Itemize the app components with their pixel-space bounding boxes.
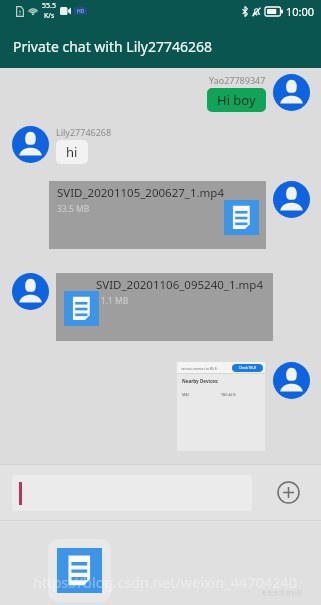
staticText: Nearby Devices:	[182, 378, 219, 384]
button[interactable]: Send file	[48, 539, 111, 602]
staticText: Hi boy	[217, 91, 256, 109]
staticText: https://blog.csdn.net/weixin_44704240	[33, 572, 298, 592]
staticText: 11.1 MB	[96, 295, 129, 307]
staticText: Check Wi-Fi	[239, 366, 257, 370]
staticText: HD	[77, 8, 85, 15]
button[interactable]: SVID_20201106_095240_1.mp4	[56, 273, 273, 341]
button[interactable]: SVID_20201105_200627_1.mp4	[49, 181, 266, 249]
staticText: hi	[66, 143, 78, 161]
button[interactable]: Private chat with Lily27746268	[0, 22, 321, 68]
button[interactable]: Profile avatar	[12, 126, 49, 163]
staticText: 55.5	[42, 1, 56, 11]
button[interactable]: Profile avatar	[273, 74, 310, 111]
staticText: TAG ALIS	[221, 392, 236, 397]
staticText: MAC	[182, 392, 190, 397]
staticText: 10:00	[286, 4, 315, 19]
staticText: SVID_20201106_095240_1.mp4	[96, 277, 263, 293]
button[interactable]: Profile avatar	[273, 362, 310, 399]
staticText: Lily27746268	[56, 126, 112, 138]
button[interactable]: hi	[56, 140, 88, 164]
button[interactable]: Add attachment	[277, 481, 300, 504]
staticText: cannot connect to Wi-Fi	[181, 366, 218, 370]
staticText: 专业开发者社区	[261, 589, 303, 597]
button[interactable]: Hi boy	[207, 88, 266, 112]
staticText: Private chat with Lily27746268	[13, 37, 213, 56]
staticText: SVID_20201105_200627_1.mp4	[57, 185, 224, 201]
staticText: K/s	[44, 11, 55, 21]
button[interactable]	[12, 475, 252, 511]
staticText: 33.5 MB	[57, 203, 90, 215]
button[interactable]: cannot connect to Wi-Fi	[177, 362, 265, 451]
button[interactable]: Profile avatar	[273, 181, 310, 218]
button[interactable]: Profile avatar	[12, 273, 49, 310]
staticText: Yao27789347	[209, 74, 266, 86]
